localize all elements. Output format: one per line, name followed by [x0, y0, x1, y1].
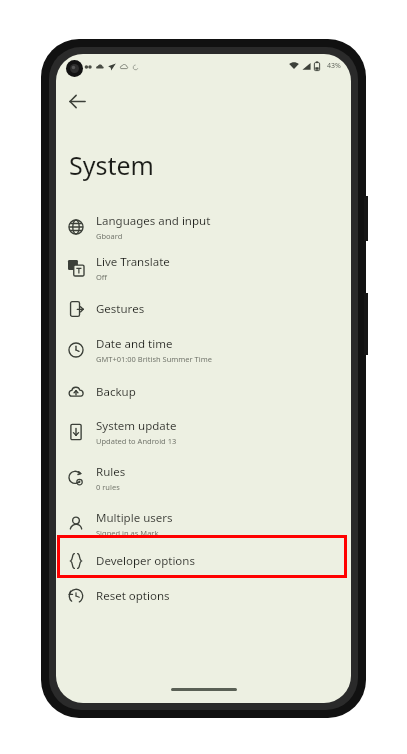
- button[interactable]: Live Translate: [56, 245, 351, 291]
- button[interactable]: System update: [56, 409, 351, 455]
- staticText: Gestures: [96, 301, 145, 317]
- staticText: 0 rules: [96, 482, 120, 492]
- staticText: Languages and input: [96, 213, 211, 229]
- button[interactable]: Languages and input: [56, 204, 351, 250]
- staticText: 43%: [327, 61, 341, 71]
- staticText: Updated to Android 13: [96, 436, 177, 446]
- button[interactable]: Gestures: [56, 291, 351, 327]
- staticText: Off: [96, 272, 108, 282]
- staticText: Developer options: [96, 553, 195, 569]
- staticText: Rules: [96, 464, 126, 480]
- button[interactable]: Date and time: [56, 327, 351, 373]
- button[interactable]: Rules: [56, 455, 351, 501]
- staticText: Multiple users: [96, 510, 173, 526]
- staticText: GMT+01:00 British Summer Time: [96, 354, 212, 364]
- staticText: Backup: [96, 384, 136, 400]
- button[interactable]: Reset options: [56, 578, 351, 614]
- staticText: Date and time: [96, 336, 173, 352]
- staticText: Live Translate: [96, 254, 170, 270]
- button[interactable]: Backup: [56, 374, 351, 410]
- staticText: Gboard: [96, 231, 123, 241]
- staticText: Signed in as Mark: [96, 528, 159, 538]
- staticText: System update: [96, 418, 177, 434]
- button[interactable]: Back: [59, 83, 95, 119]
- staticText: System: [69, 148, 154, 182]
- button[interactable]: Multiple users: [56, 501, 351, 547]
- button[interactable]: Developer options: [56, 543, 351, 579]
- staticText: Reset options: [96, 588, 170, 604]
